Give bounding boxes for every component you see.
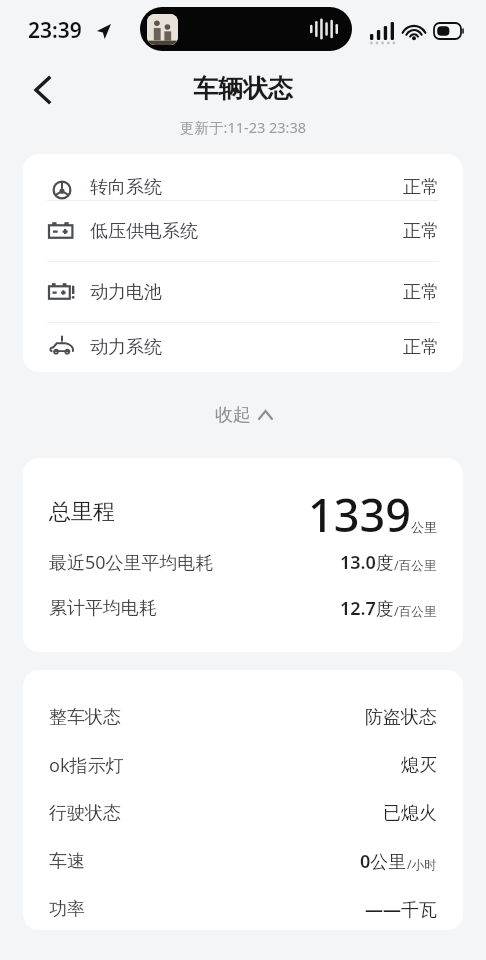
staticText: 防盗状态 xyxy=(365,706,437,729)
button[interactable]: 转向系统 xyxy=(23,154,463,200)
button[interactable]: 功率 xyxy=(49,896,437,922)
staticText: 行驶状态 xyxy=(49,802,121,825)
button[interactable]: 车速 xyxy=(49,848,437,874)
staticText: 正常 xyxy=(403,336,439,359)
staticText: 动力电池 xyxy=(90,281,162,304)
staticText: 更新于:11-23 23:38 xyxy=(180,117,307,137)
staticText: 13.0度 xyxy=(340,550,394,575)
staticText: 总里程 xyxy=(49,498,115,526)
staticText: 12.7度 xyxy=(340,596,394,621)
button[interactable]: ok指示灯 xyxy=(49,752,437,778)
staticText: 正常 xyxy=(403,220,439,243)
staticText: 最近50公里平均电耗 xyxy=(49,550,214,575)
staticText: 0公里 xyxy=(360,849,407,874)
staticText: 车辆状态 xyxy=(193,73,293,104)
staticText: ——千瓦 xyxy=(365,897,437,922)
staticText: 已熄火 xyxy=(383,802,437,825)
staticText: 低压供电系统 xyxy=(90,220,198,243)
staticText: 正常 xyxy=(403,281,439,304)
button[interactable]: 收起 xyxy=(0,372,486,458)
button[interactable]: 动力电池 xyxy=(23,262,463,322)
button[interactable]: Back xyxy=(18,66,66,114)
staticText: /百公里 xyxy=(394,557,437,574)
button[interactable]: 低压供电系统 xyxy=(23,201,463,261)
staticText: 功率 xyxy=(49,898,85,921)
staticText: 累计平均电耗 xyxy=(49,597,157,620)
staticText: 正常 xyxy=(403,176,439,199)
button[interactable]: 行驶状态 xyxy=(49,800,437,826)
button[interactable]: 最近50公里平均电耗 xyxy=(49,548,437,576)
staticText: 公里 xyxy=(411,519,437,535)
staticText: 整车状态 xyxy=(49,706,121,729)
staticText: ok指示灯 xyxy=(49,753,124,778)
staticText: /百公里 xyxy=(394,603,437,620)
staticText: 1339 xyxy=(308,484,411,540)
staticText: 车速 xyxy=(49,850,85,873)
staticText: 动力系统 xyxy=(90,336,162,359)
staticText: 熄灭 xyxy=(401,754,437,777)
button[interactable]: 动力系统 xyxy=(23,323,463,372)
button[interactable]: 累计平均电耗 xyxy=(49,594,437,622)
staticText: 23:39 xyxy=(28,16,82,45)
staticText: /小时 xyxy=(407,856,437,873)
staticText: 转向系统 xyxy=(90,176,162,199)
button[interactable]: 整车状态 xyxy=(49,704,437,730)
staticText: 收起 xyxy=(215,404,251,427)
